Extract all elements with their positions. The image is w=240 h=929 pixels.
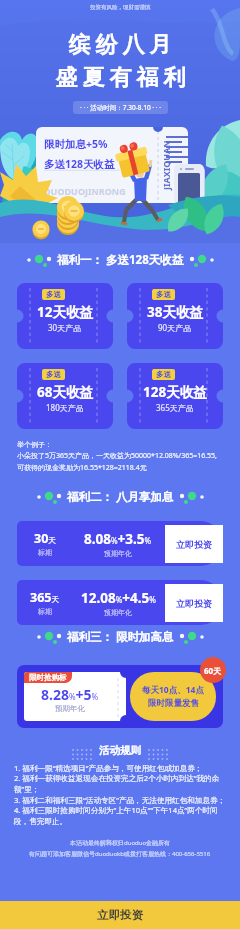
button[interactable]: 多送 — [17, 363, 113, 429]
staticText: 30天产品 — [48, 322, 82, 333]
staticText: 活动规则 — [99, 744, 141, 757]
staticText: 投资有风险，理财需谨慎 — [90, 4, 151, 11]
staticText: 预期年化 — [104, 549, 132, 558]
staticText: 多送128天收益 — [44, 157, 115, 171]
staticText: 本活动最终解释权归duoduo金融所有 — [70, 839, 171, 847]
button[interactable]: 立即投资 — [165, 525, 223, 563]
staticText: 限时限量发售 — [148, 698, 199, 709]
staticText: 标期 — [38, 548, 52, 557]
other: 60天 — [200, 657, 226, 683]
staticText: · · · 活动时间：7.30-8.10 · · · — [80, 103, 161, 112]
staticText: 福利二： 八月享加息 — [67, 489, 174, 505]
staticText: 可获得的现金奖励为16.55*128=2118.4元 — [17, 463, 147, 473]
staticText: 8.08%+3.5% — [84, 530, 152, 548]
button[interactable]: 每天10点、14点 — [130, 672, 216, 721]
button[interactable]: 多送 — [127, 363, 223, 429]
staticText: 立即投资 — [176, 598, 212, 609]
staticText: 90天产品 — [158, 322, 192, 333]
staticText: 盛夏有福利 — [53, 64, 188, 92]
staticText: 60天 — [204, 665, 222, 676]
staticText: 立即投资 — [176, 539, 212, 550]
staticText: 缤纷八月 — [66, 31, 174, 59]
staticText: 标期 — [38, 607, 52, 616]
staticText: 每天10点、14点 — [142, 684, 204, 696]
staticText: 12天收益 — [37, 303, 93, 321]
staticText: 30天 — [34, 530, 57, 547]
staticText: 福利一： 多送128天收益 — [57, 252, 184, 268]
staticText: 有问题可添加客服微信号duoduokb或拨打客服热线：400-656-5516 — [29, 850, 211, 858]
staticText: 12.08%+4.5% — [81, 589, 156, 607]
staticText: 38天收益 — [147, 303, 203, 321]
staticText: 举个例子： — [17, 440, 52, 449]
staticText: 68天收益 — [37, 383, 93, 401]
staticText: 1. 福利一限“精选项目”产品参与，可使用红包或加息券； — [14, 763, 203, 773]
staticText: 福利三： 限时加高息 — [67, 629, 174, 645]
staticText: 8.28%+5% — [41, 685, 99, 704]
staticText: 4. 福利三限时抢购时间分别为“上午10点”“下午14点”两个时间段，售完即止。 — [14, 805, 227, 826]
button[interactable]: 多送 — [127, 283, 223, 349]
button[interactable]: 立即投资 — [165, 584, 223, 622]
staticText: 3. 福利二和福利三限“活动专区”产品，无法使用红包和加息券； — [14, 795, 226, 805]
staticText: 2. 福利一获得收益返现会在投资完之后2个小时内到达“我的余额”里； — [14, 773, 227, 795]
staticText: DUODUOJINRONG — [44, 185, 126, 197]
staticText: 多送 — [46, 290, 61, 299]
staticText: 多送 — [156, 290, 171, 299]
staticText: JIAXIQUAN — [160, 140, 172, 190]
staticText: 180天产品 — [46, 402, 84, 413]
staticText: 多送 — [46, 370, 61, 379]
staticText: 128天收益 — [143, 383, 207, 401]
staticText: 小朵投了5万365天产品，一天收益为50000*12.08%/365=16.55… — [17, 451, 217, 461]
staticText: 365天产品 — [156, 402, 194, 413]
staticText: 多送 — [156, 370, 171, 379]
staticText: 365天 — [30, 589, 60, 606]
button[interactable]: 多送 — [17, 283, 113, 349]
button[interactable]: 立即投资 — [0, 901, 240, 929]
staticText: 预期年化 — [55, 704, 85, 713]
staticText: 预期年化 — [104, 608, 132, 617]
button[interactable]: 限时抢购标 — [24, 672, 126, 721]
staticText: 限时抢购标 — [29, 673, 67, 682]
staticText: 限时加息+5% — [44, 137, 108, 151]
staticText: 立即投资 — [97, 908, 143, 922]
